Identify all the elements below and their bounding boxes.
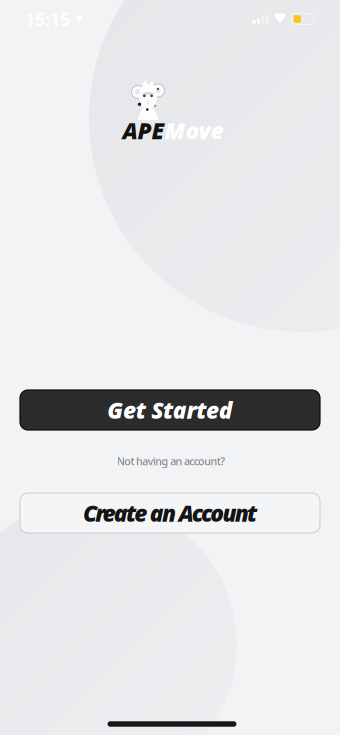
button[interactable]: Get Started: [20, 390, 320, 430]
staticText: APE: [122, 115, 164, 145]
staticText: Get Started: [107, 395, 233, 425]
staticText: Create an Account: [83, 498, 257, 528]
button[interactable]: Create an Account: [20, 493, 320, 533]
staticText: Not having an account?: [117, 454, 225, 468]
staticText: Move: [164, 115, 223, 145]
staticText: 15:15: [25, 7, 70, 30]
